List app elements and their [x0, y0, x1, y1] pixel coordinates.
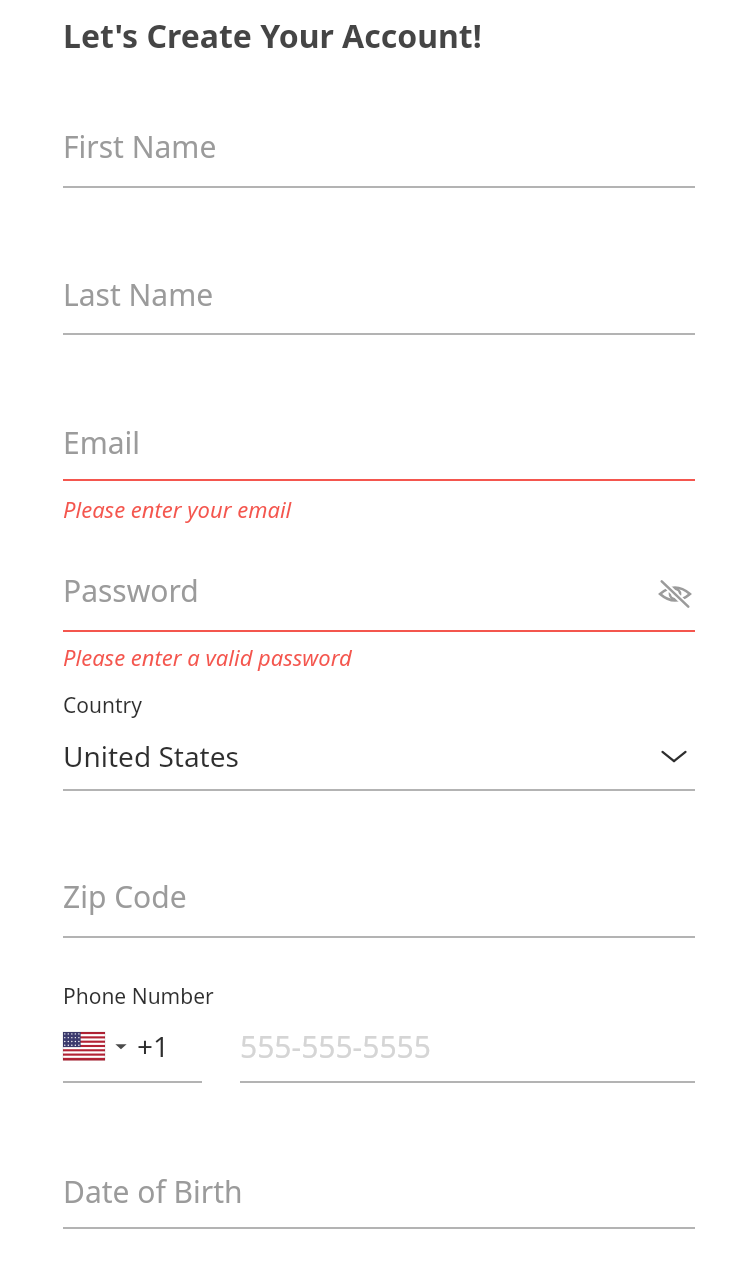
staticText: Zip Code	[63, 876, 187, 917]
staticText: +1	[137, 1027, 170, 1065]
button[interactable]: Password	[63, 570, 695, 634]
staticText: Phone Number	[63, 982, 214, 1011]
staticText: Country	[63, 691, 142, 720]
button[interactable]: Zip Code	[63, 876, 695, 940]
staticText: United States	[63, 737, 653, 775]
button[interactable]: 555-555-5555	[240, 1016, 695, 1076]
staticText: Last Name	[63, 274, 214, 315]
button[interactable]: Show password	[652, 571, 698, 617]
button[interactable]: Last Name	[63, 274, 695, 337]
staticText: Email	[63, 422, 141, 463]
staticText: Date of Birth	[63, 1171, 243, 1212]
staticText: Password	[63, 570, 199, 611]
button[interactable]: Select country calling code	[63, 1016, 202, 1076]
staticText: Please enter your email	[63, 494, 292, 524]
other: Open country list	[653, 735, 695, 777]
staticText: Let's Create Your Account!	[63, 14, 482, 58]
staticText: 555-555-5555	[240, 1026, 431, 1067]
staticText: Please enter a valid password	[63, 642, 352, 672]
button[interactable]: United States	[63, 726, 695, 786]
staticText: First Name	[63, 126, 217, 167]
button[interactable]: Email	[63, 422, 695, 483]
button[interactable]: Date of Birth	[63, 1171, 695, 1231]
button[interactable]: First Name	[63, 126, 695, 190]
